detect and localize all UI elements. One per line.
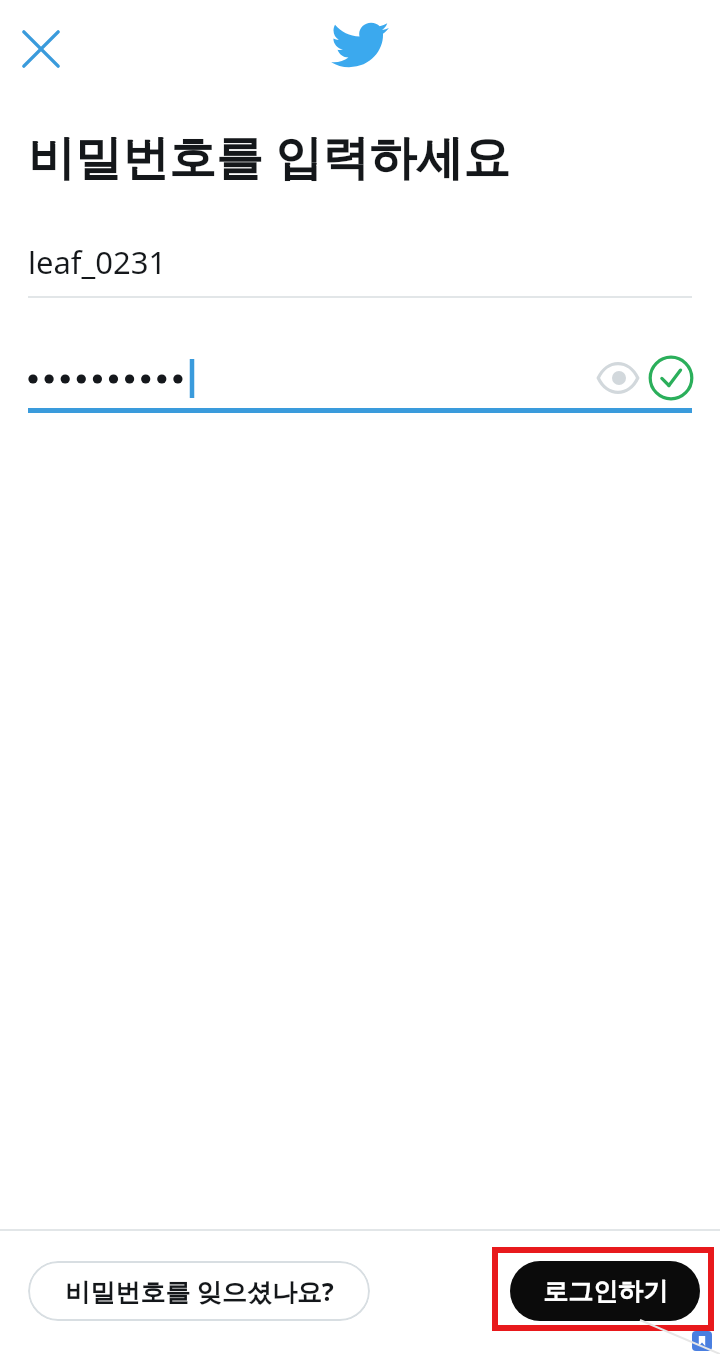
button[interactable]: 비밀번호를 잊으셨나요? (28, 1261, 370, 1321)
staticText: leaf_0231 (28, 241, 167, 283)
button[interactable]: Close (8, 16, 74, 82)
staticText: 비밀번호를 잊으셨나요? (65, 1274, 334, 1308)
staticText: 로그인하기 (543, 1276, 668, 1307)
button[interactable]: 로그인하기 (510, 1261, 700, 1321)
button[interactable]: Show password (592, 352, 644, 404)
staticText: 비밀번호를 입력하세요 (28, 124, 511, 188)
other: Twitter (331, 22, 389, 72)
other: Password valid (645, 352, 697, 404)
